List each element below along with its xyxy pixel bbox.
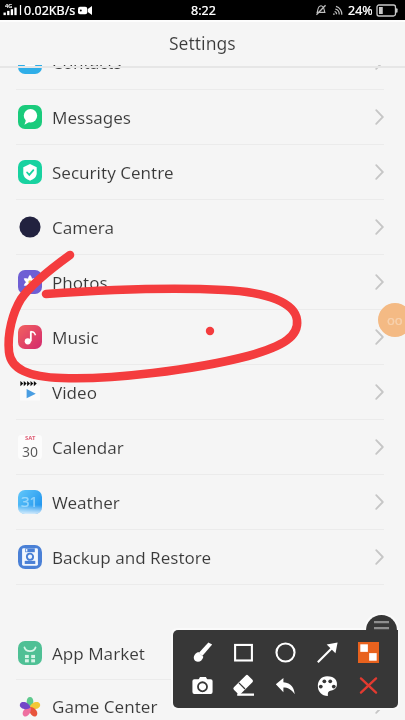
button[interactable]: Palette [310, 668, 344, 702]
staticText: Weather [52, 491, 120, 514]
button[interactable]: SAT [0, 420, 405, 475]
button[interactable]: Ellipse [268, 635, 302, 669]
staticText: 31 [21, 491, 39, 511]
button[interactable]: Settings [0, 21, 405, 64]
staticText: 0.02KB/s [24, 2, 76, 19]
button[interactable]: Arrow [310, 635, 344, 669]
staticText: oo [387, 311, 403, 329]
button[interactable]: Music [0, 310, 405, 365]
staticText: Video [52, 381, 97, 404]
staticText: Contacts [52, 51, 122, 74]
staticText: Photos [52, 271, 108, 294]
staticText: Backup and Restore [52, 546, 212, 569]
button[interactable]: Contacts [0, 35, 405, 90]
staticText: App Market [52, 642, 145, 665]
button[interactable]: Security Centre [0, 145, 405, 200]
staticText: SAT [25, 434, 36, 442]
button[interactable]: Floating assistant [378, 303, 405, 337]
button[interactable]: Photos [0, 255, 405, 310]
staticText: 4G [5, 2, 13, 9]
button[interactable]: 31 [0, 475, 405, 530]
button[interactable]: Toolbar handle [366, 615, 397, 635]
button[interactable]: Video [0, 365, 405, 420]
button[interactable]: Colour [351, 635, 385, 669]
button[interactable]: Camera [0, 200, 405, 255]
button[interactable]: Game Center [0, 680, 405, 720]
staticText: Security Centre [52, 161, 174, 184]
staticText: Music [52, 326, 99, 349]
staticText: 24% [348, 2, 373, 19]
button[interactable]: Rectangle [226, 635, 260, 669]
button[interactable]: Undo [268, 668, 302, 702]
button[interactable]: App Market [0, 627, 405, 680]
staticText: Calendar [52, 436, 124, 459]
button[interactable]: Screenshot [185, 668, 219, 702]
staticText: Camera [52, 216, 114, 239]
button[interactable]: Messages [0, 90, 405, 145]
staticText: Game Center [52, 695, 158, 718]
button[interactable]: Close [351, 668, 385, 702]
button[interactable]: Backup and Restore [0, 530, 405, 585]
button[interactable]: Eraser [226, 668, 260, 702]
staticText: Settings [169, 31, 236, 55]
staticText: Messages [52, 106, 132, 129]
staticText: 30 [22, 442, 39, 458]
staticText: 8:22 [191, 2, 216, 19]
button[interactable]: Brush [185, 635, 219, 669]
